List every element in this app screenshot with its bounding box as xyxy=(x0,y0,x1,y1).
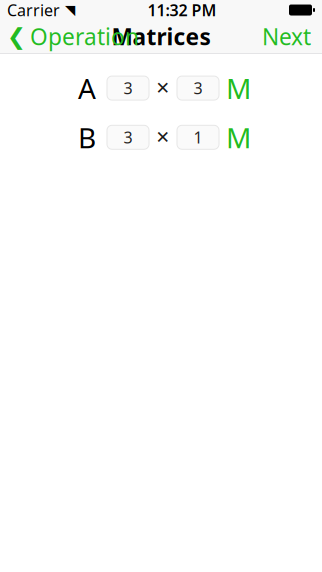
staticText: ✕ xyxy=(155,127,170,147)
staticText: 3 xyxy=(193,77,202,99)
button[interactable]: 3 xyxy=(107,125,149,149)
staticText: 1 xyxy=(193,127,202,148)
staticText: Carrier xyxy=(7,0,60,21)
staticText: Operation xyxy=(30,21,139,51)
button[interactable]: Edit matrix A xyxy=(219,76,247,100)
staticText: 11:32 PM xyxy=(147,0,216,21)
staticText: Matrices xyxy=(111,21,210,51)
staticText: M xyxy=(226,119,251,156)
button[interactable]: 3 xyxy=(177,76,219,100)
button[interactable]: ❮ xyxy=(0,14,139,58)
staticText: 3 xyxy=(123,127,132,148)
staticText: Next xyxy=(262,21,311,51)
button[interactable]: Next xyxy=(262,14,322,58)
staticText: B xyxy=(78,119,96,156)
button[interactable]: 1 xyxy=(177,125,219,149)
staticText: ✕ xyxy=(155,78,170,98)
button[interactable]: Edit matrix B xyxy=(219,125,247,149)
button[interactable]: 3 xyxy=(107,76,149,100)
staticText: M xyxy=(226,69,251,107)
staticText: A xyxy=(78,69,96,107)
staticText: 3 xyxy=(123,77,132,99)
staticText: ❮ xyxy=(7,24,26,49)
staticText: ◥ xyxy=(65,2,75,17)
